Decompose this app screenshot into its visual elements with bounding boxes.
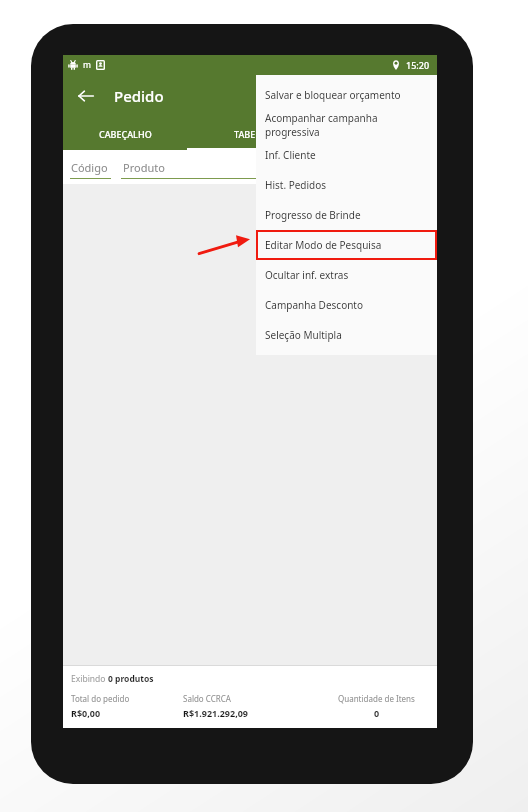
button[interactable]: Salvar e bloquear orçamento [256,80,437,110]
staticText: R$0,00 [71,707,101,719]
staticText: Hist. Pedidos [265,178,327,192]
button[interactable]: Progresso de Brinde [256,200,437,230]
staticText: 0 [374,707,380,719]
staticText: m [83,59,91,71]
button[interactable]: Editar Modo de Pesquisa [256,230,437,260]
button[interactable]: CABEÇALHO [63,117,187,150]
button[interactable]: Campanha Desconto [256,290,437,320]
staticText: Quantidade de Itens [338,693,415,704]
staticText: 0 produtos [108,673,154,685]
button[interactable]: Produto [121,150,437,184]
button[interactable]: Inf. Cliente [256,140,437,170]
button[interactable]: Seleção Multipla [256,320,437,350]
staticText: TABELA [234,128,266,140]
staticText: Exibindo [71,673,108,685]
staticText: Pedido [114,86,164,106]
button[interactable]: Código [63,150,117,184]
staticText: Total do pedido [71,693,130,704]
button[interactable] [312,117,437,150]
button[interactable]: Ocultar inf. extras [256,260,437,290]
button[interactable]: TABELA [187,117,312,150]
staticText: Salvar e bloquear orçamento [265,88,401,102]
staticText: Saldo CCRCA [183,693,231,704]
button[interactable]: Acompanhar campanha progressiva [256,110,437,140]
staticText: CABEÇALHO [99,128,152,140]
staticText: R$1.921.292,09 [183,707,249,719]
staticText: Código [71,160,108,175]
staticText: Seleção Multipla [265,328,342,342]
staticText: Inf. Cliente [265,148,316,162]
button[interactable]: Hist. Pedidos [256,170,437,200]
staticText: Campanha Desconto [265,298,364,312]
staticText: Produto [123,160,165,175]
staticText: Acompanhar campanha progressiva [265,111,433,139]
staticText: Progresso de Brinde [265,208,361,222]
button[interactable]: Back [69,79,103,113]
staticText: Editar Modo de Pesquisa [265,238,382,252]
staticText: 15:20 [406,59,430,71]
staticText: Ocultar inf. extras [265,268,349,282]
